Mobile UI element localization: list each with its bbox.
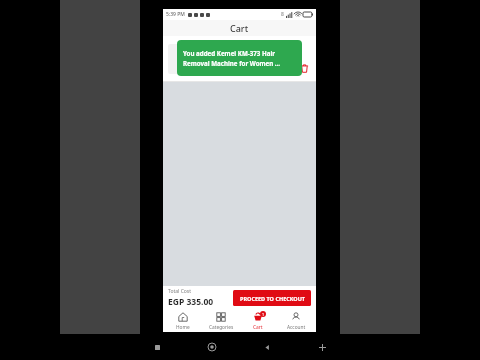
- staticText: Cart: [230, 22, 249, 34]
- button[interactable]: 1: [241, 310, 275, 332]
- staticText: Cart: [253, 324, 263, 331]
- staticText: Categories: [209, 324, 234, 331]
- staticText: You added Kemei KM-373 Hair Removal Mach…: [183, 49, 296, 68]
- button[interactable]: More: [319, 344, 326, 351]
- button[interactable]: Account: [279, 310, 313, 332]
- staticText: 8: [281, 11, 284, 18]
- staticText: Home: [176, 324, 190, 331]
- button[interactable]: Remove item: [298, 62, 310, 74]
- staticText: Account: [287, 324, 306, 331]
- staticText: EGP 335.00: [168, 296, 214, 308]
- button[interactable]: You added Kemei KM-373 Hair Removal Mach…: [177, 40, 302, 76]
- button[interactable]: Back: [264, 344, 271, 351]
- staticText: PROCEED TO CHECKOUT: [240, 295, 305, 302]
- button[interactable]: Decrease quantity: [163, 36, 316, 81]
- button[interactable]: Increase quantity: [240, 65, 249, 74]
- staticText: 1: [262, 312, 265, 317]
- staticText: 5:39 PM: [166, 11, 185, 18]
- button[interactable]: PROCEED TO CHECKOUT: [233, 290, 311, 306]
- button[interactable]: Decrease quantity: [219, 65, 228, 74]
- button[interactable]: Home: [166, 310, 200, 332]
- button[interactable]: Recents: [155, 345, 160, 350]
- button[interactable]: Home: [208, 343, 216, 351]
- staticText: Total Cost: [168, 288, 192, 295]
- button[interactable]: Categories: [204, 310, 238, 332]
